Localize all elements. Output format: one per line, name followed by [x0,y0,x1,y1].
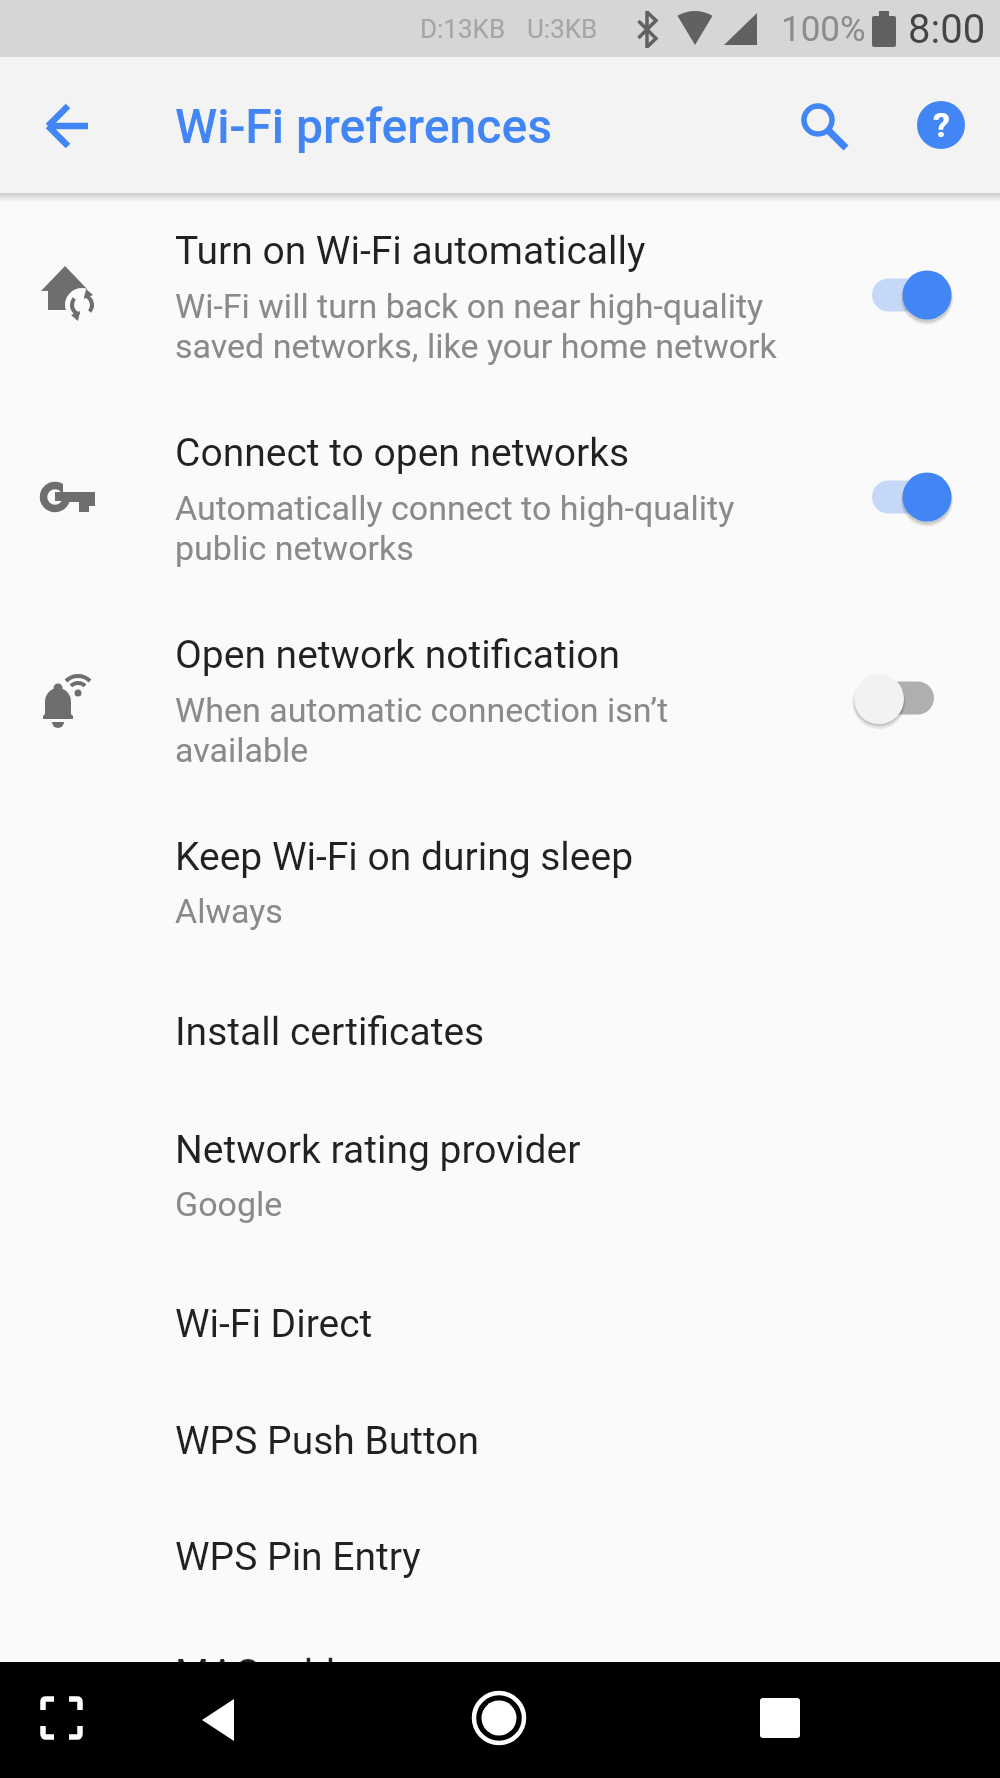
staticText: D:13KB [420,14,506,44]
staticText: Open network notification [175,632,621,678]
staticText: Connect to open networks [175,430,630,476]
button[interactable] [34,1691,88,1745]
staticText: WPS Pin Entry [175,1534,421,1580]
button[interactable]: Wi-Fi Direct [0,1270,1000,1387]
staticText: 100% [781,9,866,50]
button[interactable] [467,1686,531,1750]
button[interactable] [748,1686,812,1750]
button[interactable]: ? [905,89,977,161]
button[interactable]: Open network notification [0,600,1000,802]
button[interactable]: Connect to open networks [0,398,1000,600]
staticText: Wi-Fi preferences [175,98,552,154]
button[interactable] [0,1619,1000,1662]
button[interactable]: WPS Pin Entry [0,1503,1000,1619]
button[interactable]: Install certificates [0,977,1000,1095]
staticText: Keep Wi-Fi on during sleep [175,834,634,880]
staticText: MAC address [175,1651,409,1697]
button[interactable]: Network rating provider [0,1095,1000,1270]
staticText: Google [175,1184,283,1224]
staticText: When automatic connection isn’t availabl… [175,690,669,770]
staticText: Wi-Fi Direct [175,1301,373,1347]
staticText: ? [933,105,950,145]
staticText: Automatically connect to high-quality pu… [175,488,735,568]
button[interactable]: Turn on Wi-Fi automatically [0,196,1000,398]
staticText: Wi-Fi will turn back on near high-qualit… [175,286,777,366]
button[interactable] [185,1687,249,1751]
button[interactable] [28,86,108,166]
button[interactable]: WPS Push Button [0,1387,1000,1503]
staticText: WPS Push Button [175,1418,480,1464]
button[interactable]: Keep Wi-Fi on during sleep [0,802,1000,977]
button[interactable] [783,82,863,162]
staticText: 8:00 [908,6,986,53]
staticText: Install certificates [175,1009,485,1055]
staticText: Always [175,891,283,931]
staticText: Network rating provider [175,1127,581,1173]
staticText: U:3KB [527,14,598,44]
staticText: Turn on Wi-Fi automatically [175,228,646,274]
